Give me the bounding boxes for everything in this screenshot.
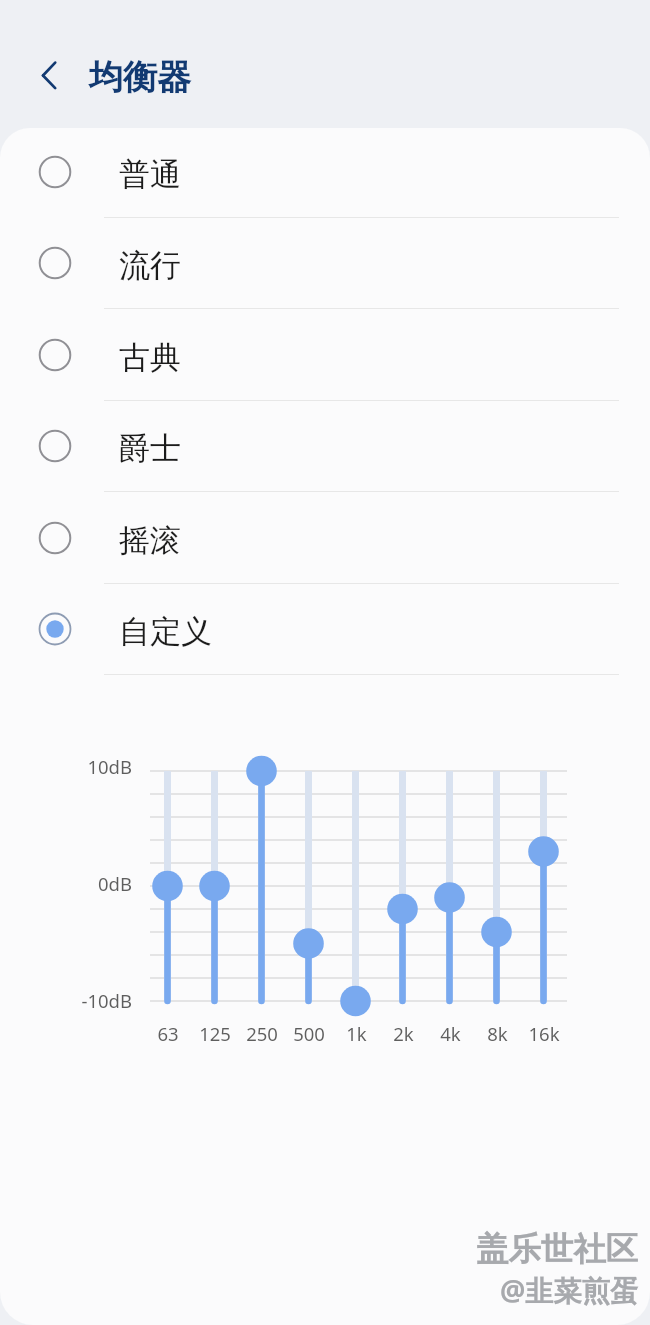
staticText: 2k [393,1021,414,1045]
staticText: 自定义 [119,612,212,651]
button[interactable]: 8k band level [477,766,517,1006]
button[interactable]: 500 band level [289,766,329,1006]
staticText: 4k [440,1021,461,1045]
staticText: 16k [528,1021,560,1045]
staticText: 摇滚 [119,521,181,560]
staticText: 盖乐世社区 [476,1229,638,1270]
button[interactable]: Back [23,49,75,101]
staticText: @韭菜煎蛋 [500,1272,639,1311]
button[interactable]: 125 band level [195,766,235,1006]
staticText: 500 [293,1021,325,1045]
staticText: -10dB [81,988,132,1012]
staticText: 盖乐世社区 [477,1230,639,1271]
button[interactable]: 1k band level [336,766,376,1006]
staticText: 250 [246,1021,278,1045]
staticText: 1k [346,1021,367,1045]
staticText: 古典 [119,338,181,377]
button[interactable]: 250 band level [242,766,282,1006]
button[interactable]: 古典 [0,309,650,401]
button[interactable]: 16k band level [524,766,564,1006]
button[interactable]: 自定义 [0,583,650,675]
staticText: 爵士 [119,429,181,468]
button[interactable]: 流行 [0,217,650,309]
staticText: @韭菜煎蛋 [499,1271,638,1310]
button[interactable]: 普通 [0,128,650,218]
button[interactable]: 63 band level [148,766,188,1006]
button[interactable]: 爵士 [0,400,650,492]
staticText: 均衡器 [89,56,191,99]
button[interactable]: 4k band level [430,766,470,1006]
staticText: 普通 [119,155,181,194]
staticText: 125 [199,1021,231,1045]
staticText: 流行 [119,246,181,285]
staticText: 8k [487,1021,508,1045]
staticText: 63 [157,1021,179,1045]
staticText: 10dB [87,754,132,778]
button[interactable]: 摇滚 [0,492,650,584]
button[interactable]: 2k band level [383,766,423,1006]
staticText: 0dB [98,871,132,895]
